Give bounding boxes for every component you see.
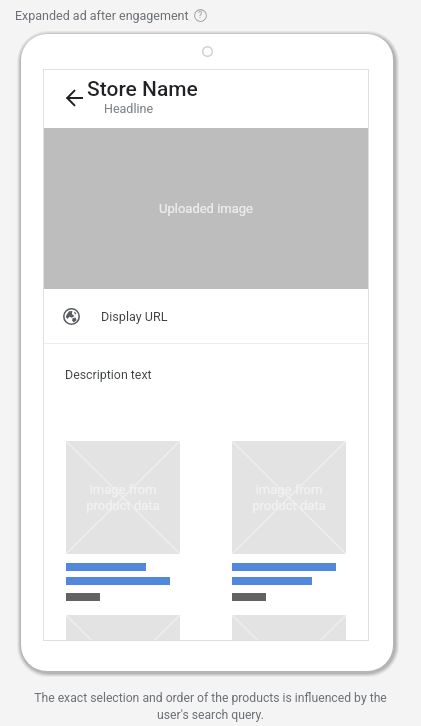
staticText: Display URL bbox=[101, 309, 168, 324]
button[interactable]: Back bbox=[43, 69, 369, 127]
button[interactable]: image from product data bbox=[232, 441, 346, 641]
button[interactable]: Help bbox=[194, 9, 207, 22]
staticText: Description text bbox=[65, 367, 152, 382]
staticText: Headline bbox=[104, 101, 154, 116]
staticText: ? bbox=[198, 10, 203, 21]
staticText: Store Name bbox=[87, 77, 198, 102]
other: Back bbox=[66, 90, 83, 106]
button[interactable]: Display URL bbox=[43, 289, 369, 343]
staticText: Uploaded image bbox=[159, 201, 253, 216]
staticText: image from product data bbox=[86, 482, 160, 513]
staticText: The exact selection and order of the pro… bbox=[34, 691, 387, 722]
staticText: Expanded ad after engagement bbox=[15, 8, 189, 23]
staticText: image from product data bbox=[252, 482, 326, 513]
button[interactable]: image from product data bbox=[66, 441, 180, 641]
